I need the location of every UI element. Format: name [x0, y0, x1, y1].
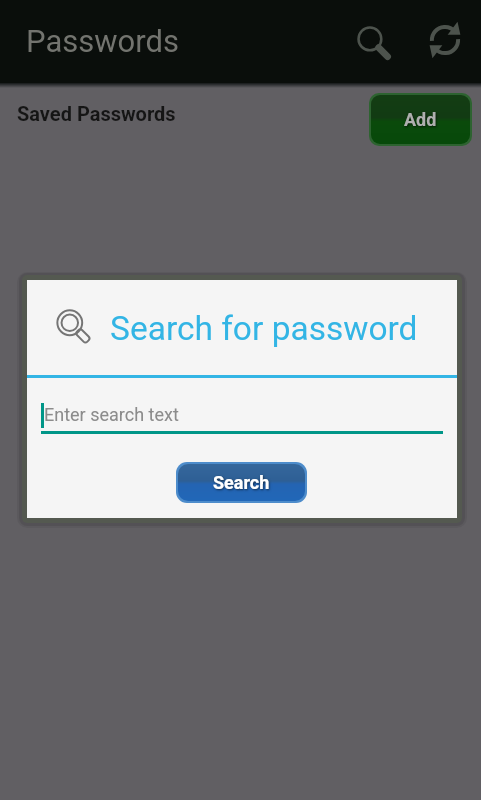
button[interactable]: Search: [178, 464, 305, 501]
staticText: Enter search text: [44, 404, 179, 425]
staticText: Search for password: [110, 309, 418, 348]
staticText: Saved Passwords: [17, 102, 176, 125]
staticText: Add: [404, 109, 437, 130]
button[interactable]: Search: [350, 19, 398, 67]
button[interactable]: Refresh: [421, 16, 469, 64]
staticText: Search: [213, 472, 270, 493]
staticText: Passwords: [26, 23, 179, 59]
button[interactable]: Add: [371, 95, 470, 144]
